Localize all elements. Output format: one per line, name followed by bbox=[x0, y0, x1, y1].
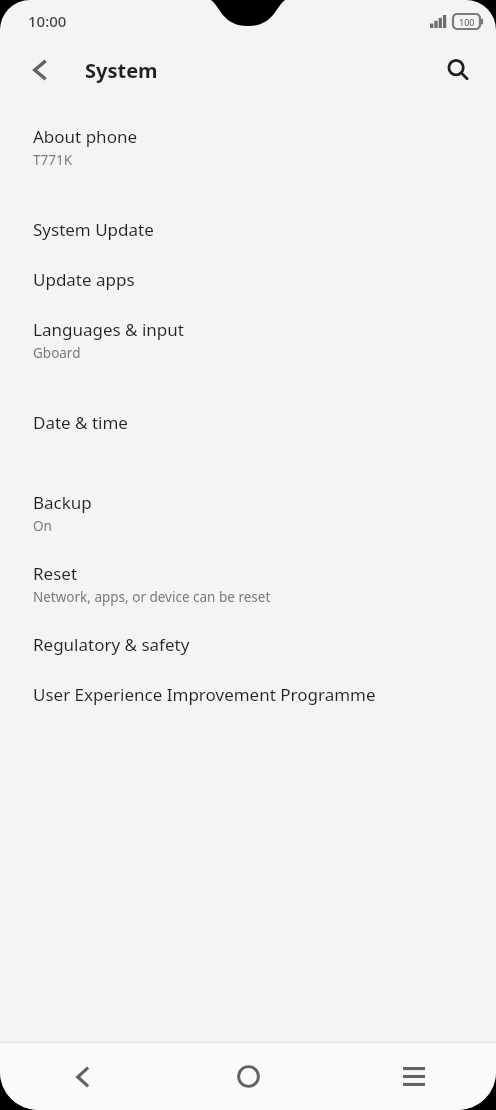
staticText: User Experience Improvement Programme bbox=[33, 683, 376, 706]
button[interactable]: Home bbox=[166, 1043, 331, 1110]
button[interactable]: Back bbox=[0, 1043, 166, 1110]
button[interactable]: System Update bbox=[0, 218, 496, 241]
button[interactable]: Recent apps bbox=[331, 1043, 496, 1110]
button[interactable]: Search bbox=[434, 46, 482, 94]
staticText: 100 bbox=[459, 16, 475, 28]
staticText: Reset bbox=[33, 562, 78, 585]
staticText: Gboard bbox=[33, 344, 81, 362]
button[interactable]: Regulatory & safety bbox=[0, 633, 496, 656]
staticText: T771K bbox=[33, 151, 73, 169]
staticText: On bbox=[33, 517, 52, 535]
button[interactable]: Update apps bbox=[0, 268, 496, 291]
button[interactable]: About phone bbox=[0, 125, 496, 169]
staticText: Network, apps, or device can be reset bbox=[33, 588, 271, 606]
staticText: 10:00 bbox=[28, 11, 67, 31]
staticText: Regulatory & safety bbox=[33, 633, 190, 656]
staticText: Date & time bbox=[33, 411, 128, 434]
staticText: Backup bbox=[33, 491, 92, 514]
button[interactable]: Reset bbox=[0, 562, 496, 606]
staticText: Languages & input bbox=[33, 318, 184, 341]
button[interactable]: Date & time bbox=[0, 411, 496, 434]
button[interactable]: Back bbox=[16, 46, 64, 94]
button[interactable]: User Experience Improvement Programme bbox=[0, 683, 496, 706]
button[interactable]: Backup bbox=[0, 491, 496, 535]
staticText: About phone bbox=[33, 125, 138, 148]
staticText: System Update bbox=[33, 218, 154, 241]
staticText: Update apps bbox=[33, 268, 135, 291]
staticText: System bbox=[85, 57, 158, 84]
button[interactable]: Languages & input bbox=[0, 318, 496, 362]
